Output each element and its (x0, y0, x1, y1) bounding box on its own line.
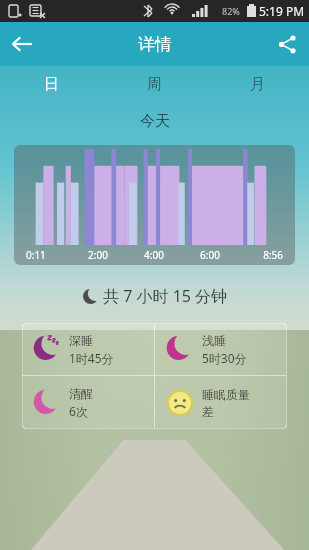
staticText: 深睡 (69, 333, 93, 348)
staticText: 4:00 (126, 248, 182, 262)
staticText: 清醒 (69, 386, 93, 401)
button[interactable]: 月 (206, 66, 309, 102)
staticText: 日 (44, 75, 59, 94)
staticText: 5:19 PM (259, 3, 305, 19)
staticText: 共 7 小时 15 分钟 (103, 285, 228, 307)
staticText: 月 (250, 75, 265, 94)
button[interactable]: 睡眠质量 (155, 376, 287, 429)
button[interactable]: 清醒 (22, 376, 154, 429)
button[interactable]: Back (0, 22, 44, 66)
button[interactable]: 日 (0, 66, 103, 102)
staticText: 差 (202, 404, 214, 419)
button[interactable]: 浅睡 (155, 323, 287, 375)
staticText: 浅睡 (202, 333, 226, 348)
staticText: 82% (222, 5, 240, 17)
staticText: 1时45分 (69, 350, 114, 366)
staticText: 今天 (140, 112, 170, 131)
staticText: 8:56 (238, 248, 283, 262)
staticText: 详情 (138, 34, 172, 55)
staticText: 5时30分 (202, 350, 247, 366)
button[interactable]: 0:11 (14, 145, 295, 265)
staticText: 睡眠质量 (202, 387, 250, 402)
button[interactable]: Share (265, 22, 309, 66)
button[interactable]: 深睡 (22, 323, 154, 375)
staticText: 0:11 (26, 248, 70, 262)
staticText: 6次 (69, 403, 88, 419)
button[interactable]: 周 (103, 66, 206, 102)
staticText: 2:00 (70, 248, 126, 262)
staticText: 周 (147, 75, 162, 94)
staticText: 6:00 (182, 248, 238, 262)
